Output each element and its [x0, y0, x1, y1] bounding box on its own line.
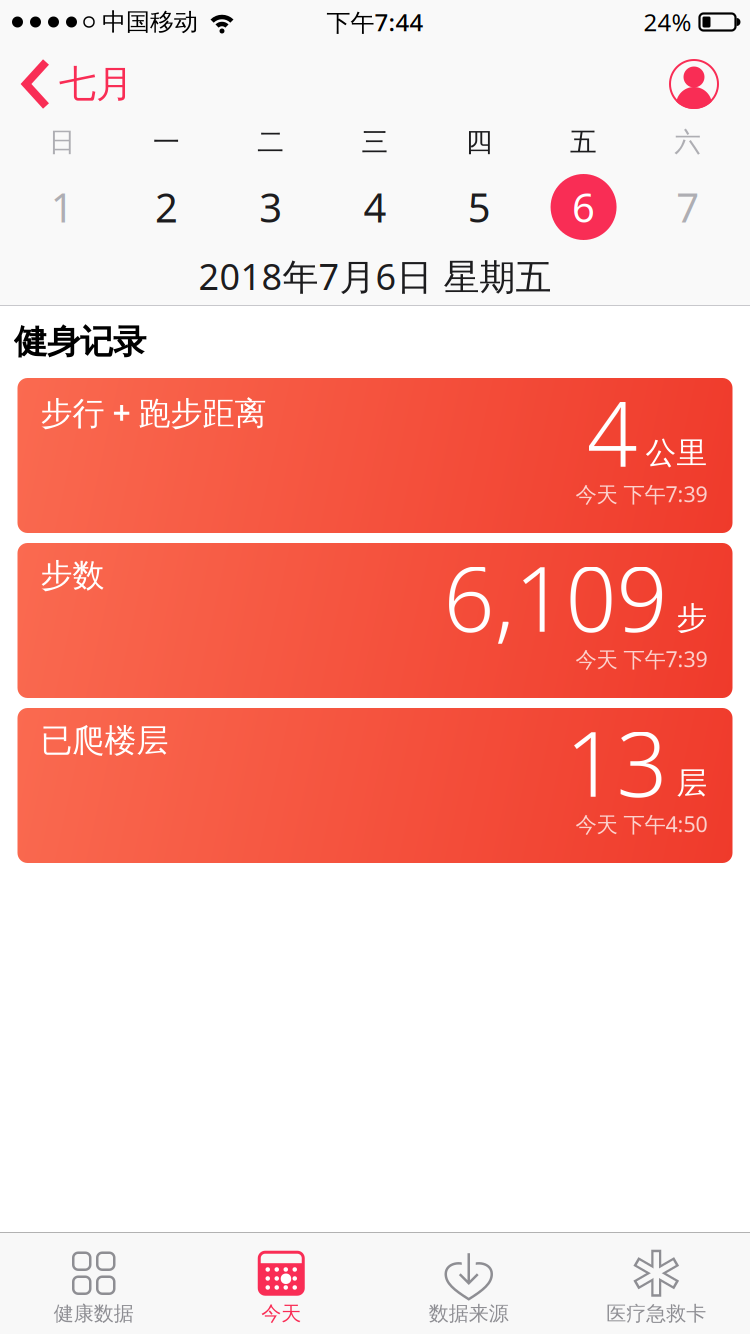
staticText: 数据来源	[429, 1301, 509, 1326]
staticText: 7	[676, 180, 699, 233]
staticText: 今天 下午7:39	[575, 645, 707, 673]
staticText: 下午7:44	[326, 6, 423, 38]
staticText: 五	[570, 126, 597, 158]
button[interactable]: 已爬楼层	[17, 708, 732, 863]
staticText: 6	[572, 180, 595, 233]
button[interactable]	[669, 59, 719, 109]
staticText: 13	[565, 703, 667, 821]
staticText: 健身记录	[14, 321, 146, 362]
staticText: 5	[468, 180, 491, 233]
button[interactable]: 5	[427, 174, 531, 240]
staticText: 一	[153, 126, 180, 158]
button[interactable]: 步数	[17, 543, 732, 698]
staticText: 四	[466, 126, 493, 158]
button[interactable]: 健康数据	[0, 1242, 187, 1334]
staticText: 1	[51, 180, 74, 233]
staticText: 2018年7月6日 星期五	[198, 252, 551, 300]
staticText: 3	[259, 180, 282, 233]
staticText: 医疗急救卡	[606, 1301, 706, 1326]
staticText: 6,109	[443, 538, 667, 656]
staticText: 已爬楼层	[40, 721, 168, 760]
button[interactable]: 2	[114, 174, 219, 240]
staticText: 4	[586, 373, 637, 491]
button[interactable]: 七月	[0, 61, 133, 107]
button[interactable]: 今天	[187, 1242, 375, 1334]
staticText: 层	[676, 764, 707, 802]
button[interactable]: 数据来源	[375, 1242, 562, 1334]
button[interactable]: 6	[531, 174, 636, 240]
button[interactable]: 7	[636, 174, 740, 240]
button[interactable]: 3	[219, 174, 323, 240]
button[interactable]: 医疗急救卡	[562, 1242, 750, 1334]
staticText: 2	[155, 180, 178, 233]
button[interactable]: 步行 + 跑步距离	[17, 378, 732, 533]
button[interactable]: 4	[323, 174, 427, 240]
staticText: 24%	[643, 6, 691, 38]
staticText: 今天 下午4:50	[575, 810, 707, 838]
staticText: 步	[676, 599, 707, 637]
staticText: 健康数据	[54, 1301, 134, 1326]
staticText: 今天	[261, 1301, 301, 1326]
staticText: 六	[674, 126, 701, 158]
staticText: 日	[49, 126, 76, 158]
staticText: 今天 下午7:39	[575, 480, 707, 508]
staticText: 二	[257, 126, 284, 158]
staticText: 步数	[40, 556, 104, 595]
staticText: 七月	[59, 61, 133, 107]
staticText: 4	[363, 180, 386, 233]
staticText: 公里	[645, 434, 707, 472]
button[interactable]: 1	[10, 174, 114, 240]
staticText: 步行 + 跑步距离	[40, 391, 266, 433]
staticText: 三	[361, 126, 388, 158]
staticText: 中国移动	[102, 7, 198, 37]
